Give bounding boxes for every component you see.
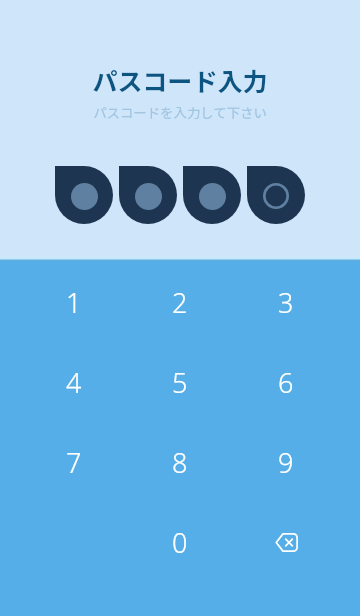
staticText: パスコードを入力して下さい xyxy=(0,102,360,121)
button[interactable]: 9 xyxy=(233,422,339,502)
button[interactable]: Delete xyxy=(233,502,339,582)
button[interactable]: 8 xyxy=(127,422,233,502)
staticText: 1 xyxy=(66,284,82,321)
staticText: 3 xyxy=(278,284,294,321)
button[interactable]: 2 xyxy=(127,262,233,342)
button[interactable]: 0 xyxy=(127,502,233,582)
staticText: 2 xyxy=(172,284,188,321)
button[interactable]: 3 xyxy=(233,262,339,342)
staticText: 0 xyxy=(172,524,188,561)
staticText: 4 xyxy=(66,364,82,401)
button[interactable]: 6 xyxy=(233,342,339,422)
staticText: 7 xyxy=(66,444,82,481)
button[interactable]: 4 xyxy=(21,342,127,422)
staticText: 9 xyxy=(278,444,294,481)
button[interactable]: 7 xyxy=(21,422,127,502)
staticText: 5 xyxy=(172,364,188,401)
staticText: 6 xyxy=(278,364,294,401)
button[interactable]: 1 xyxy=(21,262,127,342)
staticText: 8 xyxy=(172,444,188,481)
button[interactable]: 5 xyxy=(127,342,233,422)
staticText: パスコード入力 xyxy=(0,62,360,98)
